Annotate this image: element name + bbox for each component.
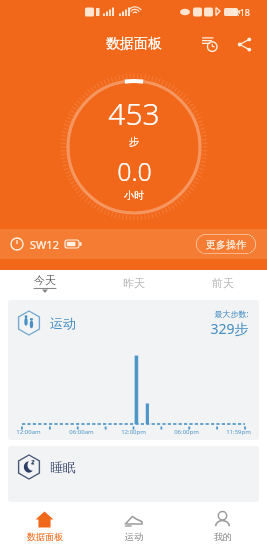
staticText: 453	[108, 93, 160, 134]
button[interactable]: 更多操作	[195, 233, 257, 255]
button[interactable]: 昨天	[89, 270, 178, 296]
staticText: 11:59pm	[226, 428, 251, 436]
staticText: 最大步数:	[214, 308, 249, 319]
button[interactable]: 运动	[8, 300, 259, 440]
staticText: 更多操作	[206, 238, 246, 251]
staticText: 步	[129, 135, 139, 148]
staticText: 12:00pm	[121, 428, 146, 436]
button[interactable]: 我的	[178, 502, 267, 550]
staticText: 今天	[34, 273, 56, 287]
staticText: 数据面板	[106, 35, 162, 53]
button[interactable]: 数据面板	[0, 502, 89, 550]
staticText: 06:00pm	[174, 428, 199, 436]
button[interactable]: 前天	[178, 270, 267, 296]
button[interactable]: History	[195, 29, 225, 59]
staticText: 睡眠	[50, 459, 76, 475]
staticText: 06:00am	[69, 428, 94, 436]
staticText: 329步	[210, 319, 249, 338]
staticText: 运动	[50, 315, 76, 331]
staticText: 1:18	[232, 6, 250, 18]
button[interactable]: Share	[229, 29, 259, 59]
staticText: 我的	[214, 531, 232, 542]
staticText: 小时	[124, 189, 144, 202]
button[interactable]: 睡眠	[8, 446, 259, 502]
staticText: 0.0	[117, 154, 152, 188]
button[interactable]: 今天	[0, 270, 89, 296]
staticText: 数据面板	[27, 531, 63, 542]
button[interactable]: 运动	[89, 502, 178, 550]
staticText: 12:00am	[16, 428, 41, 436]
staticText: 前天	[212, 276, 234, 290]
staticText: 运动	[125, 531, 143, 542]
staticText: 昨天	[123, 276, 145, 290]
staticText: SW12	[30, 237, 59, 252]
